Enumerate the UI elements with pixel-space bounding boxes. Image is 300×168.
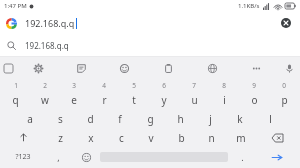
button[interactable]: 192.168.q.q <box>0 12 300 34</box>
button[interactable]: x <box>76 128 106 147</box>
staticText: z <box>58 131 63 145</box>
button[interactable]: Stickers <box>73 60 89 76</box>
button[interactable]: l <box>255 109 285 128</box>
staticText: 192.168.q.q <box>25 17 75 29</box>
button[interactable]: 6 <box>149 79 179 109</box>
staticText: r <box>102 93 107 107</box>
button[interactable]: 3 <box>59 79 89 109</box>
button[interactable]: h <box>165 109 195 128</box>
button[interactable]: c <box>106 128 136 147</box>
staticText: h <box>177 112 184 126</box>
staticText: x <box>88 131 94 145</box>
button[interactable]: s <box>45 109 75 128</box>
staticText: u <box>191 93 198 107</box>
staticText: i <box>223 93 226 107</box>
staticText: d <box>87 112 94 126</box>
staticText: a <box>27 112 33 126</box>
button[interactable]: n <box>196 128 226 147</box>
staticText: f <box>118 112 122 126</box>
staticText: 8 <box>222 81 226 90</box>
staticText: 192.168.q.q <box>25 40 69 51</box>
button[interactable]: d <box>75 109 105 128</box>
button[interactable]: 5 <box>119 79 149 109</box>
staticText: s <box>58 112 63 126</box>
staticText: p <box>281 93 288 107</box>
staticText: l <box>269 112 272 126</box>
staticText: m <box>236 131 246 145</box>
button[interactable]: Clear search <box>278 15 294 31</box>
button[interactable]: Gboard menu <box>0 57 16 79</box>
button[interactable]: Emoji <box>72 147 100 167</box>
staticText: 1.1KB/s <box>238 2 260 10</box>
button[interactable]: , <box>44 147 72 167</box>
staticText: o <box>251 93 258 107</box>
button[interactable]: Shift <box>1 128 45 147</box>
staticText: 4 <box>102 81 106 90</box>
button[interactable]: m <box>226 128 256 147</box>
button[interactable]: a <box>15 109 45 128</box>
staticText: g <box>147 112 154 126</box>
staticText: y <box>161 93 167 107</box>
button[interactable]: Go <box>256 147 298 167</box>
button[interactable]: . <box>228 147 256 167</box>
staticText: t <box>132 93 136 107</box>
button[interactable]: 7 <box>179 79 209 109</box>
staticText: 2 <box>43 81 47 90</box>
button[interactable]: b <box>166 128 196 147</box>
staticText: 0 <box>282 81 286 90</box>
staticText: . <box>241 151 244 163</box>
staticText: n <box>208 131 215 145</box>
button[interactable]: Clipboard <box>160 60 176 76</box>
staticText: w <box>41 93 49 107</box>
staticText: k <box>237 112 243 126</box>
staticText: , <box>57 151 60 163</box>
button[interactable]: 9 <box>239 79 269 109</box>
staticText: 7 <box>192 81 196 90</box>
button[interactable]: Translate <box>204 60 220 76</box>
staticText: b <box>178 131 185 145</box>
staticText: 1:47 PM <box>4 2 27 10</box>
staticText: v <box>148 131 154 145</box>
button[interactable]: f <box>105 109 135 128</box>
button[interactable]: More options <box>248 60 264 76</box>
button[interactable]: 8 <box>209 79 239 109</box>
staticText: q <box>12 93 19 107</box>
button[interactable]: Backspace <box>256 128 299 147</box>
button[interactable]: 4 <box>89 79 119 109</box>
button[interactable]: 0 <box>269 79 299 109</box>
staticText: 6 <box>162 81 166 90</box>
button[interactable]: Voice input <box>278 57 300 79</box>
button[interactable]: Settings <box>30 60 46 76</box>
button[interactable]: 2 <box>30 79 59 109</box>
button[interactable]: Emoji GIF <box>116 60 132 76</box>
staticText: 9 <box>252 81 256 90</box>
button[interactable]: g <box>135 109 165 128</box>
button[interactable]: j <box>195 109 225 128</box>
staticText: ?123 <box>15 152 31 162</box>
button[interactable]: 192.168.q.q <box>0 34 300 56</box>
button[interactable]: k <box>225 109 255 128</box>
button[interactable]: ?123 <box>2 147 44 167</box>
staticText: c <box>119 131 124 145</box>
staticText: 5 <box>132 81 136 90</box>
staticText: j <box>209 112 212 126</box>
button[interactable]: 1 <box>1 79 30 109</box>
staticText: 1 <box>14 81 18 90</box>
button[interactable]: v <box>136 128 166 147</box>
staticText: 3 <box>72 81 76 90</box>
staticText: e <box>71 93 77 107</box>
button[interactable]: z <box>45 128 76 147</box>
